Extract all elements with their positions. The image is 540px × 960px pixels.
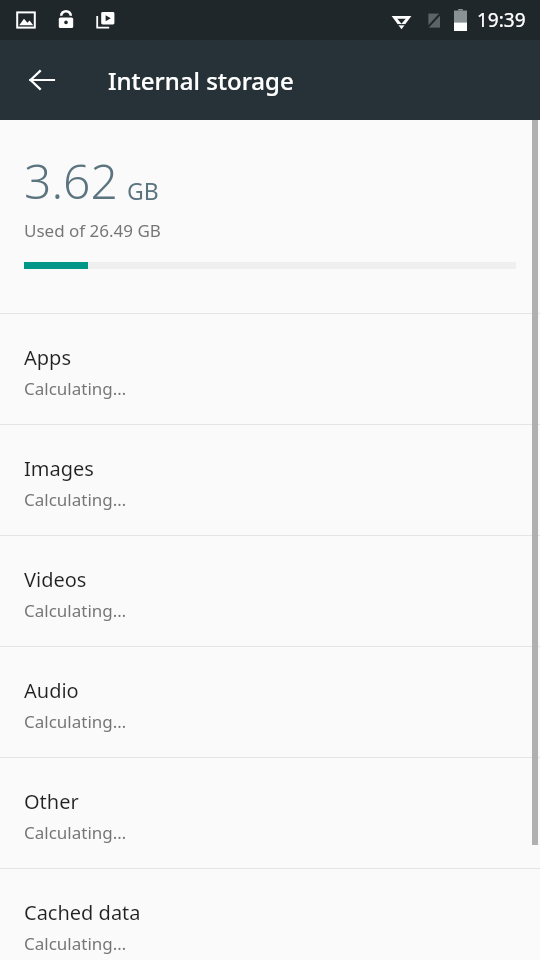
- staticText: Used of 26.49 GB: [24, 219, 161, 242]
- button[interactable]: Cached data: [0, 869, 540, 960]
- button[interactable]: Back: [14, 52, 70, 108]
- button[interactable]: Other: [0, 758, 540, 868]
- staticText: Calculating…: [24, 488, 127, 511]
- staticText: Cached data: [24, 899, 141, 926]
- staticText: 3.62: [24, 148, 118, 213]
- staticText: Calculating…: [24, 377, 127, 400]
- staticText: 19:39: [477, 7, 526, 33]
- staticText: Audio: [24, 677, 79, 704]
- staticText: Calculating…: [24, 821, 127, 844]
- staticText: Images: [24, 455, 94, 482]
- button[interactable]: Videos: [0, 536, 540, 646]
- staticText: Apps: [24, 344, 71, 371]
- button[interactable]: Images: [0, 425, 540, 535]
- staticText: GB: [127, 175, 159, 206]
- staticText: Calculating…: [24, 710, 127, 733]
- button[interactable]: Apps: [0, 314, 540, 424]
- staticText: Videos: [24, 566, 87, 593]
- staticText: Internal storage: [108, 64, 294, 97]
- button[interactable]: Audio: [0, 647, 540, 757]
- staticText: Other: [24, 788, 79, 815]
- staticText: Calculating…: [24, 599, 127, 622]
- staticText: Calculating…: [24, 932, 127, 955]
- button[interactable]: 3.62: [0, 120, 540, 313]
